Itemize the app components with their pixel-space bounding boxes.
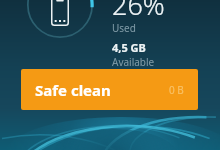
staticText: 0 B (169, 83, 184, 97)
button[interactable]: Safe clean (21, 69, 198, 110)
staticText: Available (112, 55, 155, 69)
staticText: 26% (112, 0, 165, 23)
staticText: 4,5 GB (112, 40, 146, 55)
staticText: Used (112, 21, 136, 35)
staticText: Safe clean (35, 80, 111, 100)
